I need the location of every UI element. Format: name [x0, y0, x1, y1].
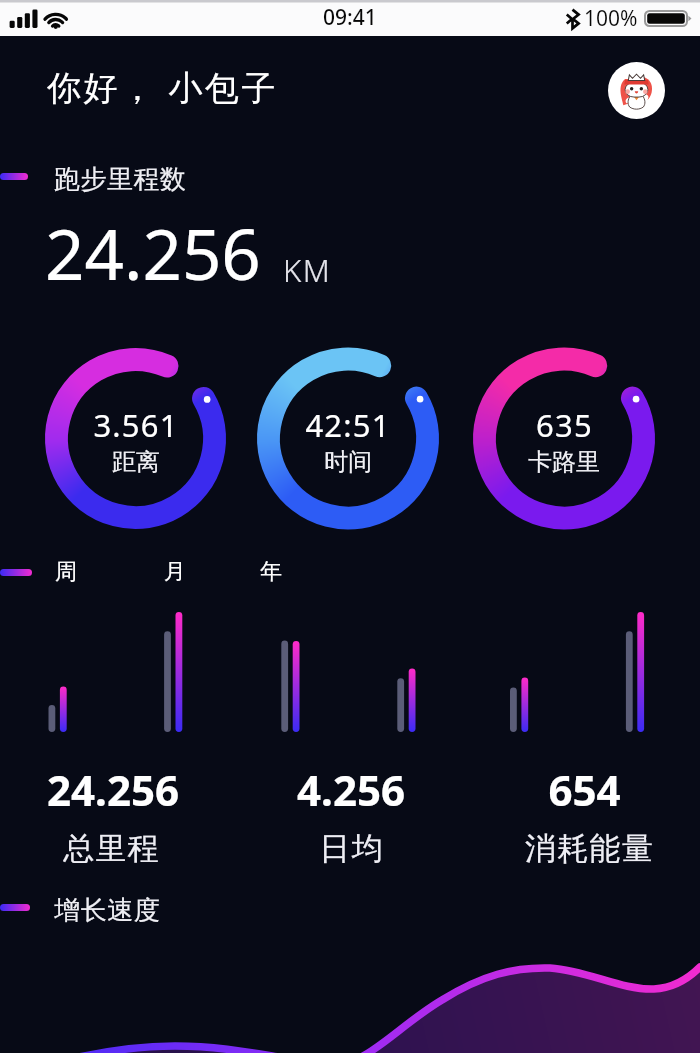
staticText: 3.561: [93, 404, 179, 446]
button[interactable]: 4.256: [231, 761, 471, 809]
staticText: 周: [55, 558, 77, 586]
staticText: KM: [283, 249, 332, 291]
staticText: 635: [536, 404, 593, 446]
button[interactable]: 周: [40, 550, 92, 594]
staticText: 24.256: [47, 761, 179, 809]
staticText: 消耗能量: [525, 829, 654, 868]
staticText: 24.256: [45, 206, 261, 300]
button[interactable]: 月: [149, 550, 201, 594]
staticText: 年: [260, 558, 282, 586]
staticText: 总里程: [63, 829, 160, 868]
button[interactable]: 635: [473, 348, 655, 530]
staticText: 卡路里: [528, 447, 600, 477]
staticText: 时间: [324, 447, 372, 477]
button[interactable]: Profile avatar: [608, 62, 665, 119]
staticText: 日均: [319, 829, 384, 868]
button[interactable]: 42:51: [257, 348, 439, 530]
staticText: 距离: [112, 447, 160, 477]
staticText: 42:51: [305, 404, 391, 446]
staticText: 月: [164, 558, 186, 586]
staticText: 100%: [584, 4, 638, 33]
button[interactable]: 年: [245, 550, 297, 594]
button[interactable]: 654: [464, 761, 700, 809]
staticText: 跑步里程数: [54, 163, 187, 196]
staticText: 你好， 小包子: [47, 64, 279, 110]
staticText: 增长速度: [54, 894, 160, 927]
staticText: 654: [548, 761, 621, 809]
button[interactable]: 24.256: [0, 761, 233, 809]
staticText: 4.256: [297, 761, 405, 809]
staticText: 09:41: [323, 3, 377, 32]
button[interactable]: 3.561: [45, 348, 227, 530]
